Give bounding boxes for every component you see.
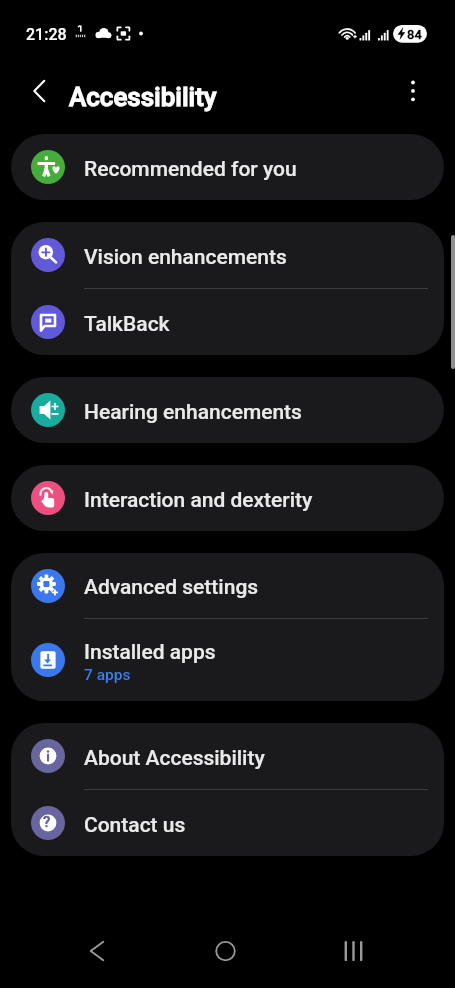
staticText: Accessibility xyxy=(69,82,217,112)
button[interactable]: Hearing enhancements xyxy=(11,377,444,443)
staticText: Advanced settings xyxy=(84,575,259,600)
staticText: Hearing enhancements xyxy=(84,400,302,425)
button[interactable]: Contact us xyxy=(11,790,444,856)
button[interactable]: Installed apps xyxy=(11,619,444,701)
button[interactable]: Recommended for you xyxy=(11,134,444,200)
staticText: Vision enhancements xyxy=(84,245,287,270)
button[interactable]: More options xyxy=(391,69,435,113)
button[interactable]: Interaction and dexterity xyxy=(11,465,444,531)
staticText: 7 apps xyxy=(84,666,131,684)
staticText: Interaction and dexterity xyxy=(84,488,313,513)
staticText: Recommended for you xyxy=(84,157,297,182)
staticText: ? xyxy=(43,813,51,831)
button[interactable]: TalkBack xyxy=(11,289,444,355)
button[interactable]: Navigate up xyxy=(18,69,62,113)
button[interactable]: Back xyxy=(69,923,125,979)
button[interactable]: About Accessibility xyxy=(11,723,444,789)
staticText: Installed apps xyxy=(84,640,216,665)
staticText: 21:28 xyxy=(26,25,67,44)
button[interactable]: Advanced settings xyxy=(11,553,444,618)
button[interactable]: Recent apps xyxy=(326,923,382,979)
staticText: 84 xyxy=(407,27,422,42)
staticText: TalkBack xyxy=(84,312,170,337)
staticText: Contact us xyxy=(84,813,186,838)
staticText: About Accessibility xyxy=(84,746,265,771)
button[interactable]: Vision enhancements xyxy=(11,222,444,288)
button[interactable]: Home xyxy=(198,923,254,979)
